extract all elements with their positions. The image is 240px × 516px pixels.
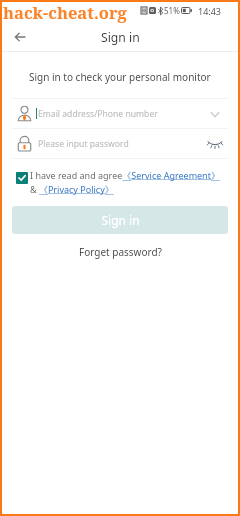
staticText: Email address/Phone number [38,108,158,120]
staticText: Forget password? [79,245,162,259]
button[interactable]: I have read and agree [16,172,28,184]
staticText: 14:43 [198,5,222,17]
staticText: hack-cheat.org [3,1,127,23]
staticText: 51% [164,5,180,16]
staticText: Sign in [101,29,140,46]
staticText: Sign in to check your personal monitor [29,70,211,84]
button[interactable]: Back [3,21,37,53]
staticText: Sign in [101,212,140,228]
button[interactable]: Show accounts [206,104,224,124]
button[interactable]: Show password [206,134,224,154]
staticText: Please input password [38,138,129,150]
staticText: I have read and agree《Service Agreement》… [30,169,228,195]
button[interactable]: Sign in [12,206,228,234]
button[interactable]: Forget password? [73,243,168,261]
